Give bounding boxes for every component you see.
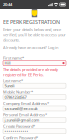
button[interactable]: 07861234567 [3, 95, 66, 100]
staticText: Create Password* [3, 123, 35, 129]
staticText: EE PERK REGISTRATION [3, 18, 60, 26]
staticText: j.sunali@gmail.com [4, 117, 39, 122]
staticText: Personal Email Address* [3, 112, 47, 117]
staticText: Enter your details below and, once verif… [3, 27, 66, 43]
staticText: 20:44 [3, 2, 12, 7]
staticText: Already have an account? Log in [3, 45, 58, 50]
staticText: Sunali [4, 83, 14, 88]
button[interactable]: •••••••••••• [3, 129, 66, 134]
staticText: sa.sunali@ee.co.uk [4, 106, 37, 111]
button[interactable]: sa.sunali@ee.co.uk [3, 106, 66, 111]
button[interactable]: Hill [3, 60, 66, 65]
staticText: Hill [4, 60, 10, 66]
staticText: Company Email Address* [3, 101, 49, 106]
button[interactable]: Sunali [3, 83, 66, 88]
button[interactable]: j.sunali@gmail.com [3, 117, 66, 122]
staticText: Mobile Number* [3, 89, 33, 95]
staticText: Last name* [3, 78, 23, 83]
staticText: First name* [3, 55, 24, 61]
staticText: 07861234567 [4, 94, 26, 100]
staticText: •••••••••••• [4, 129, 28, 134]
staticText: The details provided are already registe… [3, 67, 58, 77]
staticText: Confirm Password* [3, 135, 38, 140]
